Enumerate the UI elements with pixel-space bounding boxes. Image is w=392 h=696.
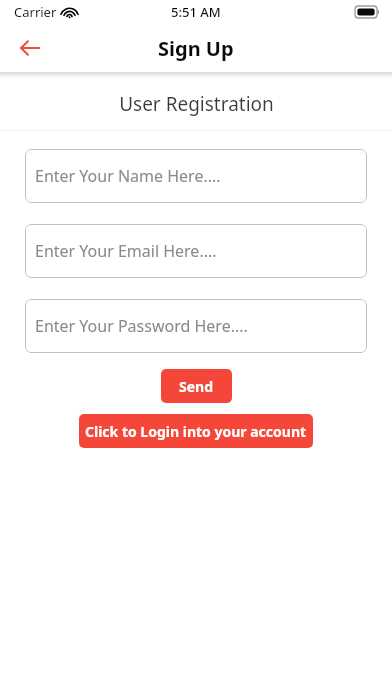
staticText: Send [179,377,214,396]
staticText: Enter Your Email Here.... [35,240,217,262]
button[interactable]: Enter Your Email Here.... [25,224,367,278]
button[interactable]: Send [161,369,232,403]
button[interactable]: Click to Login into your account [79,414,313,448]
staticText: Sign Up [158,35,234,62]
button[interactable]: Enter Your Name Here.... [25,149,367,203]
button[interactable]: Enter Your Password Here.... [25,299,367,353]
button[interactable]: Back [8,26,52,70]
staticText: Enter Your Name Here.... [35,165,221,187]
staticText: 5:51 AM [171,3,221,21]
staticText: Enter Your Password Here.... [35,315,248,337]
staticText: Click to Login into your account [85,422,307,441]
staticText: User Registration [119,91,274,117]
staticText: Carrier [14,3,57,21]
